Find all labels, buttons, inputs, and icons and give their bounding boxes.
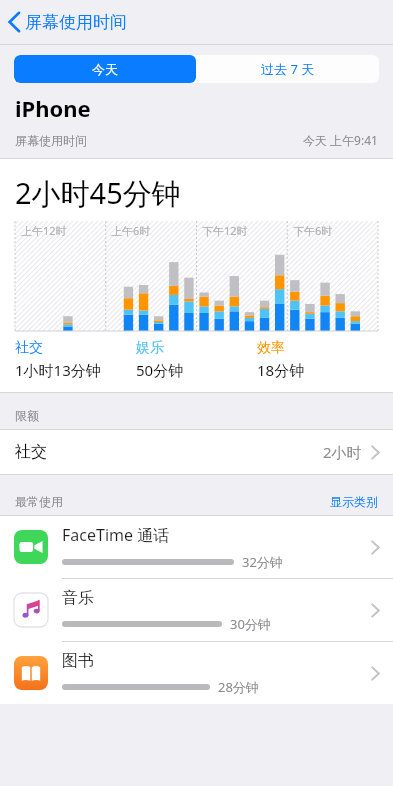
staticText: iPhone	[15, 93, 91, 123]
staticText: 显示类别	[330, 494, 378, 509]
staticText: 屏幕使用时间	[25, 12, 127, 33]
button[interactable]: 图书	[0, 642, 393, 704]
button[interactable]: 过去 7 天	[196, 55, 379, 83]
staticText: 28分钟	[218, 678, 259, 696]
button[interactable]: Back	[0, 0, 393, 44]
button[interactable]: FaceTime 通话	[0, 516, 393, 579]
staticText: 今天	[92, 61, 118, 77]
staticText: 今天 上午9:41	[303, 132, 378, 148]
button[interactable]: 今天	[14, 55, 196, 83]
button[interactable]: 社交	[0, 430, 393, 474]
staticText: 50分钟	[136, 360, 184, 380]
staticText: 图书	[62, 651, 94, 671]
staticText: 社交	[15, 442, 47, 462]
staticText: 下午12时	[202, 223, 248, 238]
button[interactable]: 显示类别	[330, 494, 378, 515]
staticText: FaceTime 通话	[62, 524, 170, 546]
staticText: 娱乐	[136, 339, 164, 357]
staticText: 社交	[15, 339, 43, 357]
staticText: 屏幕使用时间	[15, 133, 87, 148]
button[interactable]: 音乐	[0, 579, 393, 642]
staticText: 音乐	[62, 588, 94, 608]
staticText: 1小时13分钟	[15, 360, 101, 380]
staticText: 限额	[15, 408, 39, 423]
staticText: 最常使用	[15, 494, 63, 509]
staticText: 上午6时	[111, 223, 151, 238]
staticText: 2小时45分钟	[15, 173, 181, 213]
staticText: 过去 7 天	[261, 60, 315, 78]
staticText: 下午6时	[293, 223, 333, 238]
staticText: 2小时	[323, 442, 362, 462]
staticText: 上午12时	[21, 223, 67, 238]
staticText: 32分钟	[242, 553, 283, 571]
staticText: 18分钟	[257, 360, 305, 380]
staticText: 效率	[257, 339, 285, 357]
staticText: 30分钟	[230, 615, 271, 633]
